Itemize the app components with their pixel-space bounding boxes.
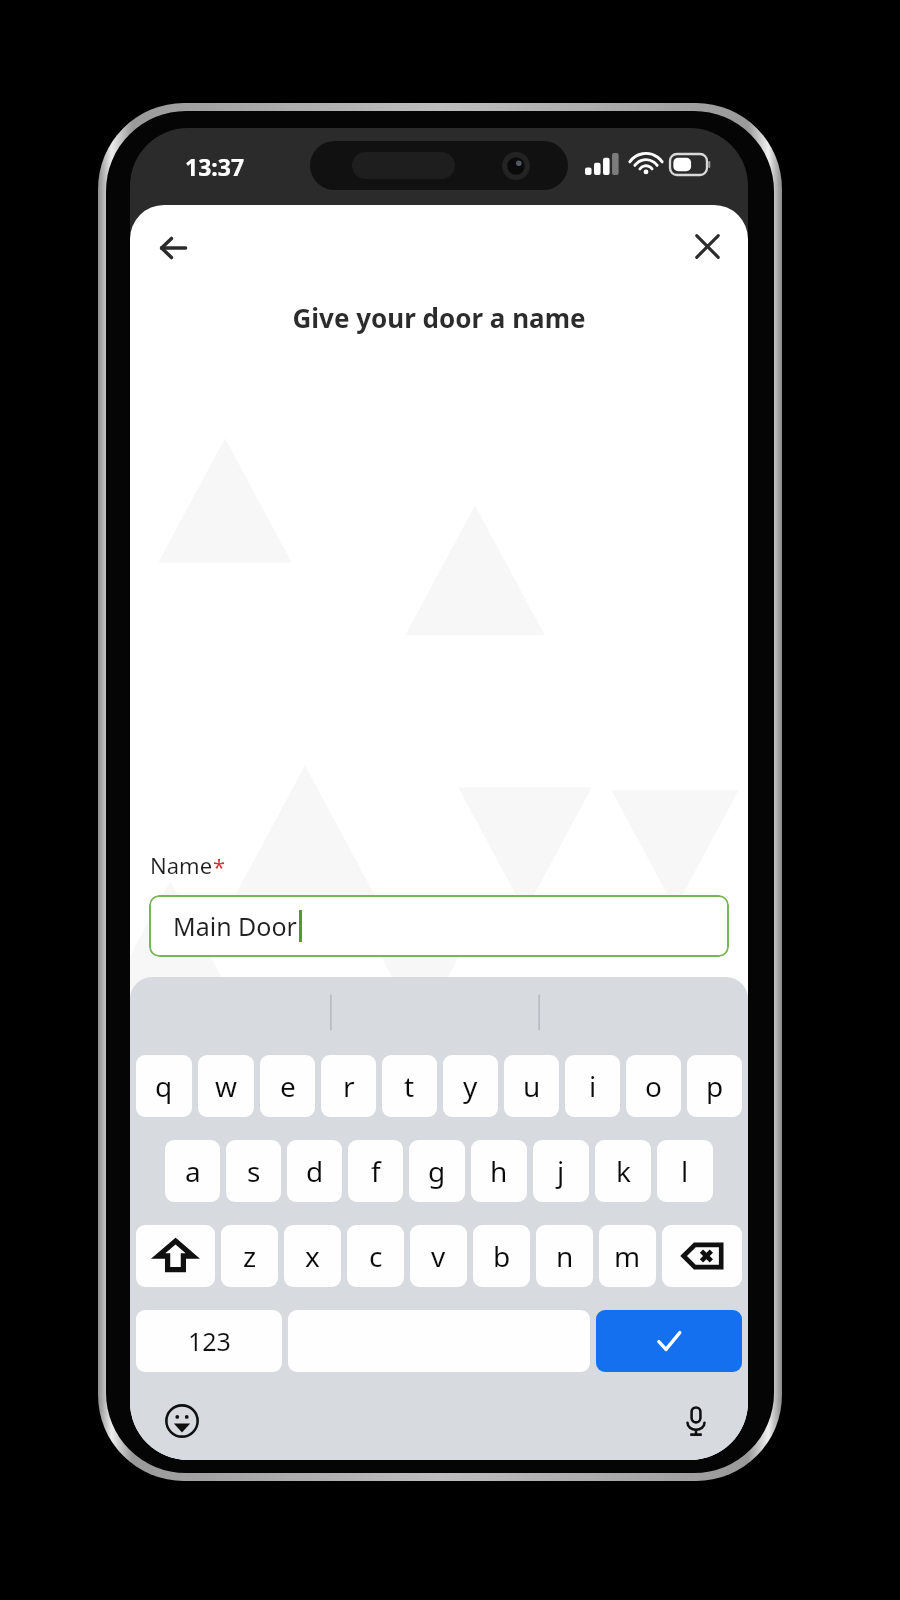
- button[interactable]: Emoji: [156, 1395, 208, 1447]
- staticText: p: [706, 1067, 724, 1105]
- staticText: x: [305, 1237, 320, 1275]
- button[interactable]: Shift: [136, 1225, 215, 1287]
- button[interactable]: k: [595, 1140, 651, 1202]
- button[interactable]: s: [226, 1140, 281, 1202]
- staticText: v: [431, 1237, 446, 1275]
- button[interactable]: o: [626, 1055, 681, 1117]
- staticText: h: [490, 1152, 508, 1190]
- staticText: a: [185, 1152, 201, 1190]
- button[interactable]: Voice input: [670, 1395, 722, 1447]
- button[interactable]: p: [687, 1055, 742, 1117]
- staticText: z: [243, 1237, 257, 1275]
- staticText: 13:37: [185, 151, 245, 182]
- button[interactable]: d: [287, 1140, 342, 1202]
- button[interactable]: z: [221, 1225, 278, 1287]
- staticText: Main Door: [173, 909, 297, 943]
- button[interactable]: y: [443, 1055, 498, 1117]
- button[interactable]: j: [533, 1140, 589, 1202]
- button[interactable]: e: [260, 1055, 315, 1117]
- button[interactable]: x: [284, 1225, 341, 1287]
- staticText: *: [213, 851, 226, 881]
- staticText: q: [155, 1067, 173, 1105]
- staticText: o: [645, 1067, 662, 1105]
- staticText: i: [589, 1067, 597, 1105]
- button[interactable]: Close: [678, 217, 736, 275]
- button[interactable]: Back: [142, 217, 204, 279]
- button[interactable]: Enter: [596, 1310, 742, 1372]
- button[interactable]: c: [347, 1225, 404, 1287]
- staticText: s: [247, 1152, 261, 1190]
- staticText: c: [369, 1237, 383, 1275]
- button[interactable]: i: [565, 1055, 620, 1117]
- button[interactable]: b: [473, 1225, 530, 1287]
- staticText: t: [404, 1067, 415, 1105]
- staticText: m: [614, 1237, 641, 1275]
- button[interactable]: v: [410, 1225, 467, 1287]
- staticText: Name: [150, 850, 213, 880]
- button[interactable]: a: [165, 1140, 220, 1202]
- staticText: r: [343, 1067, 355, 1105]
- button[interactable]: m: [599, 1225, 656, 1287]
- staticText: w: [215, 1067, 238, 1105]
- button[interactable]: f: [348, 1140, 403, 1202]
- button[interactable]: q: [136, 1055, 192, 1117]
- button[interactable]: r: [321, 1055, 376, 1117]
- staticText: f: [371, 1152, 381, 1190]
- button[interactable]: g: [409, 1140, 465, 1202]
- staticText: g: [428, 1152, 446, 1190]
- button[interactable]: l: [657, 1140, 713, 1202]
- staticText: 123: [188, 1324, 231, 1358]
- staticText: y: [463, 1067, 478, 1105]
- staticText: n: [556, 1237, 574, 1275]
- staticText: e: [280, 1067, 296, 1105]
- button[interactable]: w: [198, 1055, 254, 1117]
- button[interactable]: u: [504, 1055, 559, 1117]
- button[interactable]: 123: [136, 1310, 282, 1372]
- staticText: b: [493, 1237, 511, 1275]
- staticText: l: [681, 1152, 689, 1190]
- button[interactable]: h: [471, 1140, 527, 1202]
- staticText: j: [557, 1152, 565, 1190]
- staticText: d: [306, 1152, 324, 1190]
- staticText: k: [616, 1152, 631, 1190]
- staticText: Give your door a name: [130, 300, 748, 335]
- button[interactable]: Main Door: [149, 895, 729, 957]
- button[interactable]: t: [382, 1055, 437, 1117]
- button[interactable]: Backspace: [662, 1225, 742, 1287]
- button[interactable]: n: [536, 1225, 593, 1287]
- staticText: u: [523, 1067, 541, 1105]
